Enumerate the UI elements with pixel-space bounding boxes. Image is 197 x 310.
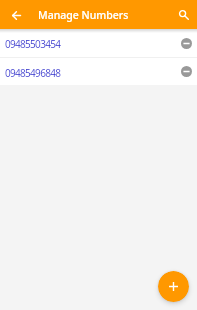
button[interactable]: 09485496848 — [0, 58, 197, 85]
staticText: Manage Numbers — [38, 8, 129, 22]
button[interactable]: Search — [171, 2, 197, 28]
staticText: 09485503454 — [5, 37, 61, 51]
button[interactable]: 09485503454 — [0, 29, 197, 57]
staticText: 09485496848 — [5, 66, 61, 80]
button[interactable]: Add number — [158, 271, 189, 302]
button[interactable]: Back — [3, 2, 29, 28]
button[interactable]: Remove — [181, 38, 192, 49]
button[interactable]: Remove — [181, 66, 192, 77]
